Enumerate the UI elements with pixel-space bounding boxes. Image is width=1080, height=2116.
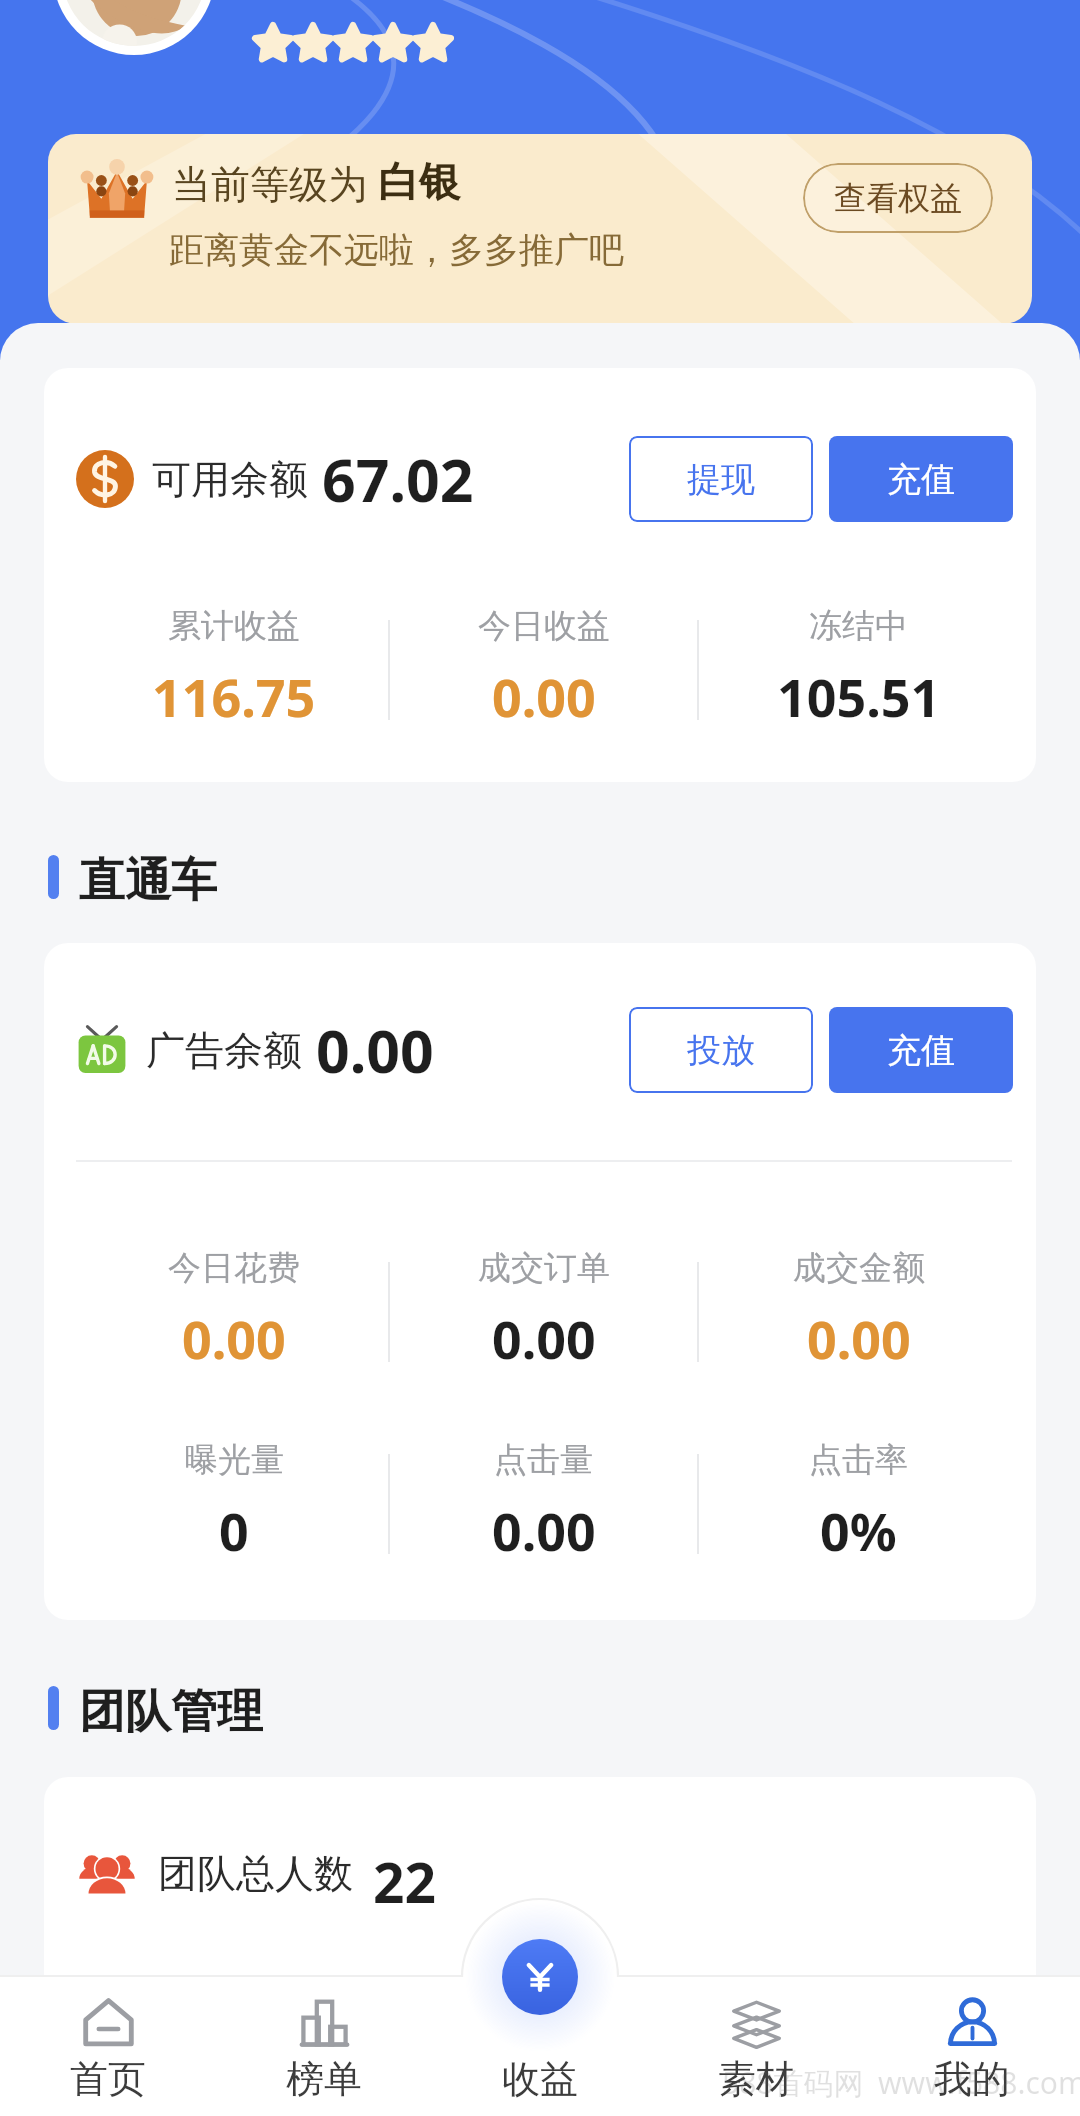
staticText: 成交订单 — [478, 1247, 610, 1289]
staticText: 0.00 — [492, 661, 596, 732]
button[interactable]: 榜单 — [216, 1975, 432, 2116]
staticText: 116.75 — [152, 661, 316, 732]
staticText: 0.00 — [316, 1010, 434, 1090]
staticText: 105.51 — [777, 661, 941, 732]
staticText: 588首码网 — [722, 2062, 864, 2103]
staticText: 充值 — [887, 458, 955, 501]
staticText: 0.00 — [807, 1303, 911, 1374]
staticText: 团队总人数 — [158, 1849, 353, 1898]
button[interactable]: 收益 — [432, 1975, 648, 2116]
staticText: 累计收益 — [168, 605, 300, 647]
staticText: 0 — [219, 1495, 249, 1566]
staticText: 当前等级为 — [172, 156, 378, 209]
staticText: 提现 — [687, 458, 755, 501]
staticText: 我的 — [934, 2055, 1010, 2103]
button[interactable]: 充值 — [829, 1007, 1013, 1093]
button[interactable]: 我的 — [864, 1975, 1080, 2116]
staticText: 白银 — [378, 157, 460, 209]
staticText: 素材 — [718, 2055, 794, 2103]
staticText: 榜单 — [286, 2055, 362, 2103]
staticText: 直通车 — [79, 852, 217, 902]
staticText: 广告余额 — [146, 1026, 302, 1075]
staticText: 冻结中 — [809, 605, 908, 647]
staticText: 点击量 — [494, 1439, 593, 1481]
staticText: 首页 — [70, 2055, 146, 2103]
button[interactable]: 收益 — [502, 1939, 578, 2015]
staticText: 投放 — [687, 1029, 755, 1072]
button[interactable]: 首页 — [0, 1975, 216, 2116]
button[interactable]: 头像 — [53, 0, 215, 55]
staticText: 充值 — [887, 1029, 955, 1072]
button[interactable]: 团队总人数 — [44, 1777, 1036, 1975]
staticText: 可用余额 — [152, 455, 308, 504]
staticText: 成交金额 — [793, 1247, 925, 1289]
staticText: 曝光量 — [185, 1439, 284, 1481]
button[interactable]: 素材 — [648, 1975, 864, 2116]
button[interactable]: 查看权益 — [803, 163, 993, 233]
staticText: 今日花费 — [168, 1247, 300, 1289]
staticText: 团队管理 — [79, 1683, 263, 1733]
staticText: 0.00 — [492, 1303, 596, 1374]
staticText: 22 — [373, 1844, 436, 1903]
staticText: 67.02 — [322, 439, 474, 519]
staticText: 距离黄金不远啦，多多推广吧 — [169, 228, 624, 272]
staticText: 收益 — [502, 2055, 578, 2103]
button[interactable]: 充值 — [829, 436, 1013, 522]
staticText: www.f588.com — [878, 2062, 1080, 2103]
staticText: 0% — [820, 1495, 897, 1566]
staticText: 0.00 — [182, 1303, 286, 1374]
staticText: 0.00 — [492, 1495, 596, 1566]
staticText: 查看权益 — [834, 178, 962, 218]
button[interactable]: 投放 — [629, 1007, 813, 1093]
staticText: 点击率 — [809, 1439, 908, 1481]
staticText: 今日收益 — [478, 605, 610, 647]
button[interactable]: 提现 — [629, 436, 813, 522]
